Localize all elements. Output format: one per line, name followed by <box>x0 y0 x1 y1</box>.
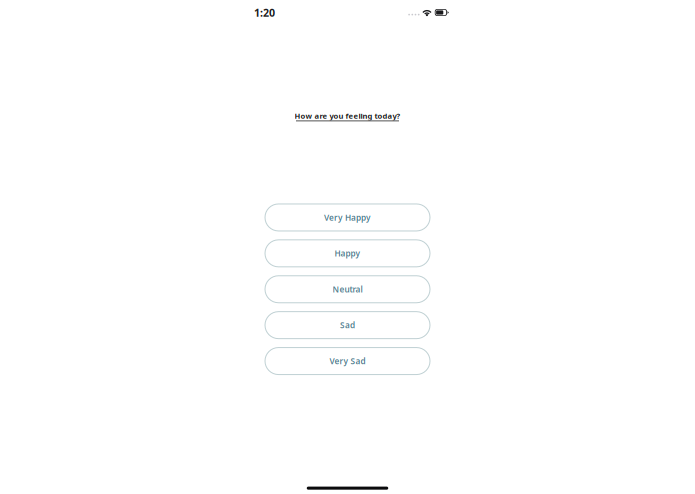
staticText: Happy <box>334 248 360 259</box>
staticText: Very Sad <box>329 355 365 367</box>
button[interactable]: Neutral <box>265 276 430 303</box>
staticText: Sad <box>340 319 355 331</box>
button[interactable]: Sad <box>265 312 430 339</box>
button[interactable]: Very Happy <box>265 204 430 231</box>
staticText: 1:20 <box>254 5 275 20</box>
staticText: Neutral <box>332 284 362 295</box>
button[interactable]: Happy <box>265 240 430 267</box>
staticText: Very Happy <box>324 212 371 223</box>
staticText: How are you feeling today? <box>294 110 400 121</box>
button[interactable]: Very Sad <box>265 348 430 375</box>
